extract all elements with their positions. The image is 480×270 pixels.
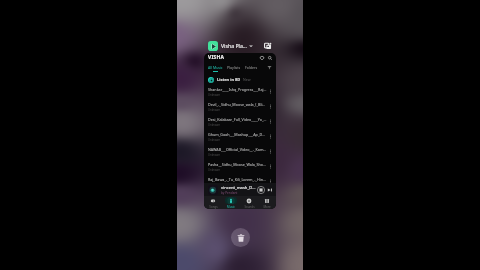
staticText: Visha Pla… bbox=[221, 42, 247, 49]
button[interactable]: Sounds bbox=[240, 196, 258, 209]
staticText: All Music bbox=[208, 65, 223, 70]
button[interactable]: More options bbox=[267, 163, 274, 170]
button[interactable]: More options bbox=[267, 133, 274, 140]
button[interactable]: Search bbox=[268, 56, 272, 60]
staticText: Playlists bbox=[227, 65, 241, 70]
staticText: Music bbox=[227, 205, 235, 209]
staticText: Pasha__Sidhu_Moose_Wala_Shooter_Ten… bbox=[208, 162, 267, 167]
button[interactable]: Songs bbox=[204, 196, 222, 209]
button[interactable]: More options bbox=[267, 88, 274, 95]
staticText: Unknown bbox=[208, 138, 221, 142]
button[interactable]: Play bbox=[257, 186, 265, 194]
staticText: Shankar____Ishq_Progress___Raj_Ayat… bbox=[208, 87, 267, 92]
button[interactable]: Delete bbox=[231, 228, 250, 247]
button[interactable]: Desi_Kalakaar_Full_Video____Yo_Yo_H… bbox=[204, 114, 276, 129]
button[interactable]: Filter bbox=[267, 65, 272, 70]
button[interactable]: Music bbox=[222, 196, 240, 209]
staticText: Unknown bbox=[208, 108, 221, 112]
button[interactable]: Pop out bbox=[264, 42, 272, 50]
staticText: Unknown bbox=[208, 153, 221, 157]
staticText: Songs bbox=[209, 205, 218, 209]
staticText: Unknown bbox=[208, 123, 221, 127]
button[interactable]: More options bbox=[267, 118, 274, 125]
button[interactable]: More options bbox=[267, 178, 274, 185]
staticText: Sounds bbox=[244, 205, 255, 209]
staticText: Raj_Bawa_-_Tu_Kili_Lorem_-_Hina(M_Hi… bbox=[208, 177, 267, 182]
button[interactable]: Raj_Bawa_-_Tu_Kili_Lorem_-_Hina(M_Hi… bbox=[204, 174, 276, 189]
button[interactable]: vincent_mash_Deep_vo… bbox=[204, 183, 276, 196]
button[interactable]: Premium bbox=[260, 56, 264, 60]
staticText: Desi_Kalakaar_Full_Video____Yo_Yo_H… bbox=[208, 117, 267, 122]
button[interactable]: More bbox=[258, 196, 276, 209]
staticText: Devil_-_Sidhu_Moose_wala_(_Blind_Nav… bbox=[208, 102, 267, 107]
staticText: New bbox=[243, 77, 251, 82]
button[interactable]: Shankar____Ishq_Progress___Raj_Ayat… bbox=[204, 84, 276, 99]
staticText: VISHA bbox=[208, 54, 225, 61]
button[interactable]: More options bbox=[267, 103, 274, 110]
staticText: More bbox=[263, 205, 271, 209]
button[interactable]: More options bbox=[267, 148, 274, 155]
staticText: by Pendant bbox=[221, 191, 238, 195]
staticText: Folders bbox=[245, 65, 258, 70]
staticText: Listen in 8D bbox=[217, 77, 241, 82]
staticText: vincent_mash_Deep_vo… bbox=[221, 185, 257, 191]
button[interactable]: Listen in 8D bbox=[204, 74, 276, 85]
staticText: Unknown bbox=[208, 93, 221, 97]
button[interactable]: Devil_-_Sidhu_Moose_wala_(_Blind_Nav… bbox=[204, 99, 276, 114]
button[interactable]: Next bbox=[267, 187, 273, 193]
button[interactable]: Ghum_Gaah___Mashup___Ap_Dhillon_S… bbox=[204, 129, 276, 144]
staticText: NAWAB___Official_Video__-_Kambi_Mah… bbox=[208, 147, 267, 152]
button[interactable]: Pasha__Sidhu_Moose_Wala_Shooter_Ten… bbox=[204, 159, 276, 174]
staticText: Ghum_Gaah___Mashup___Ap_Dhillon_S… bbox=[208, 132, 267, 137]
staticText: Unknown bbox=[208, 168, 221, 172]
button[interactable]: NAWAB___Official_Video__-_Kambi_Mah… bbox=[204, 144, 276, 159]
